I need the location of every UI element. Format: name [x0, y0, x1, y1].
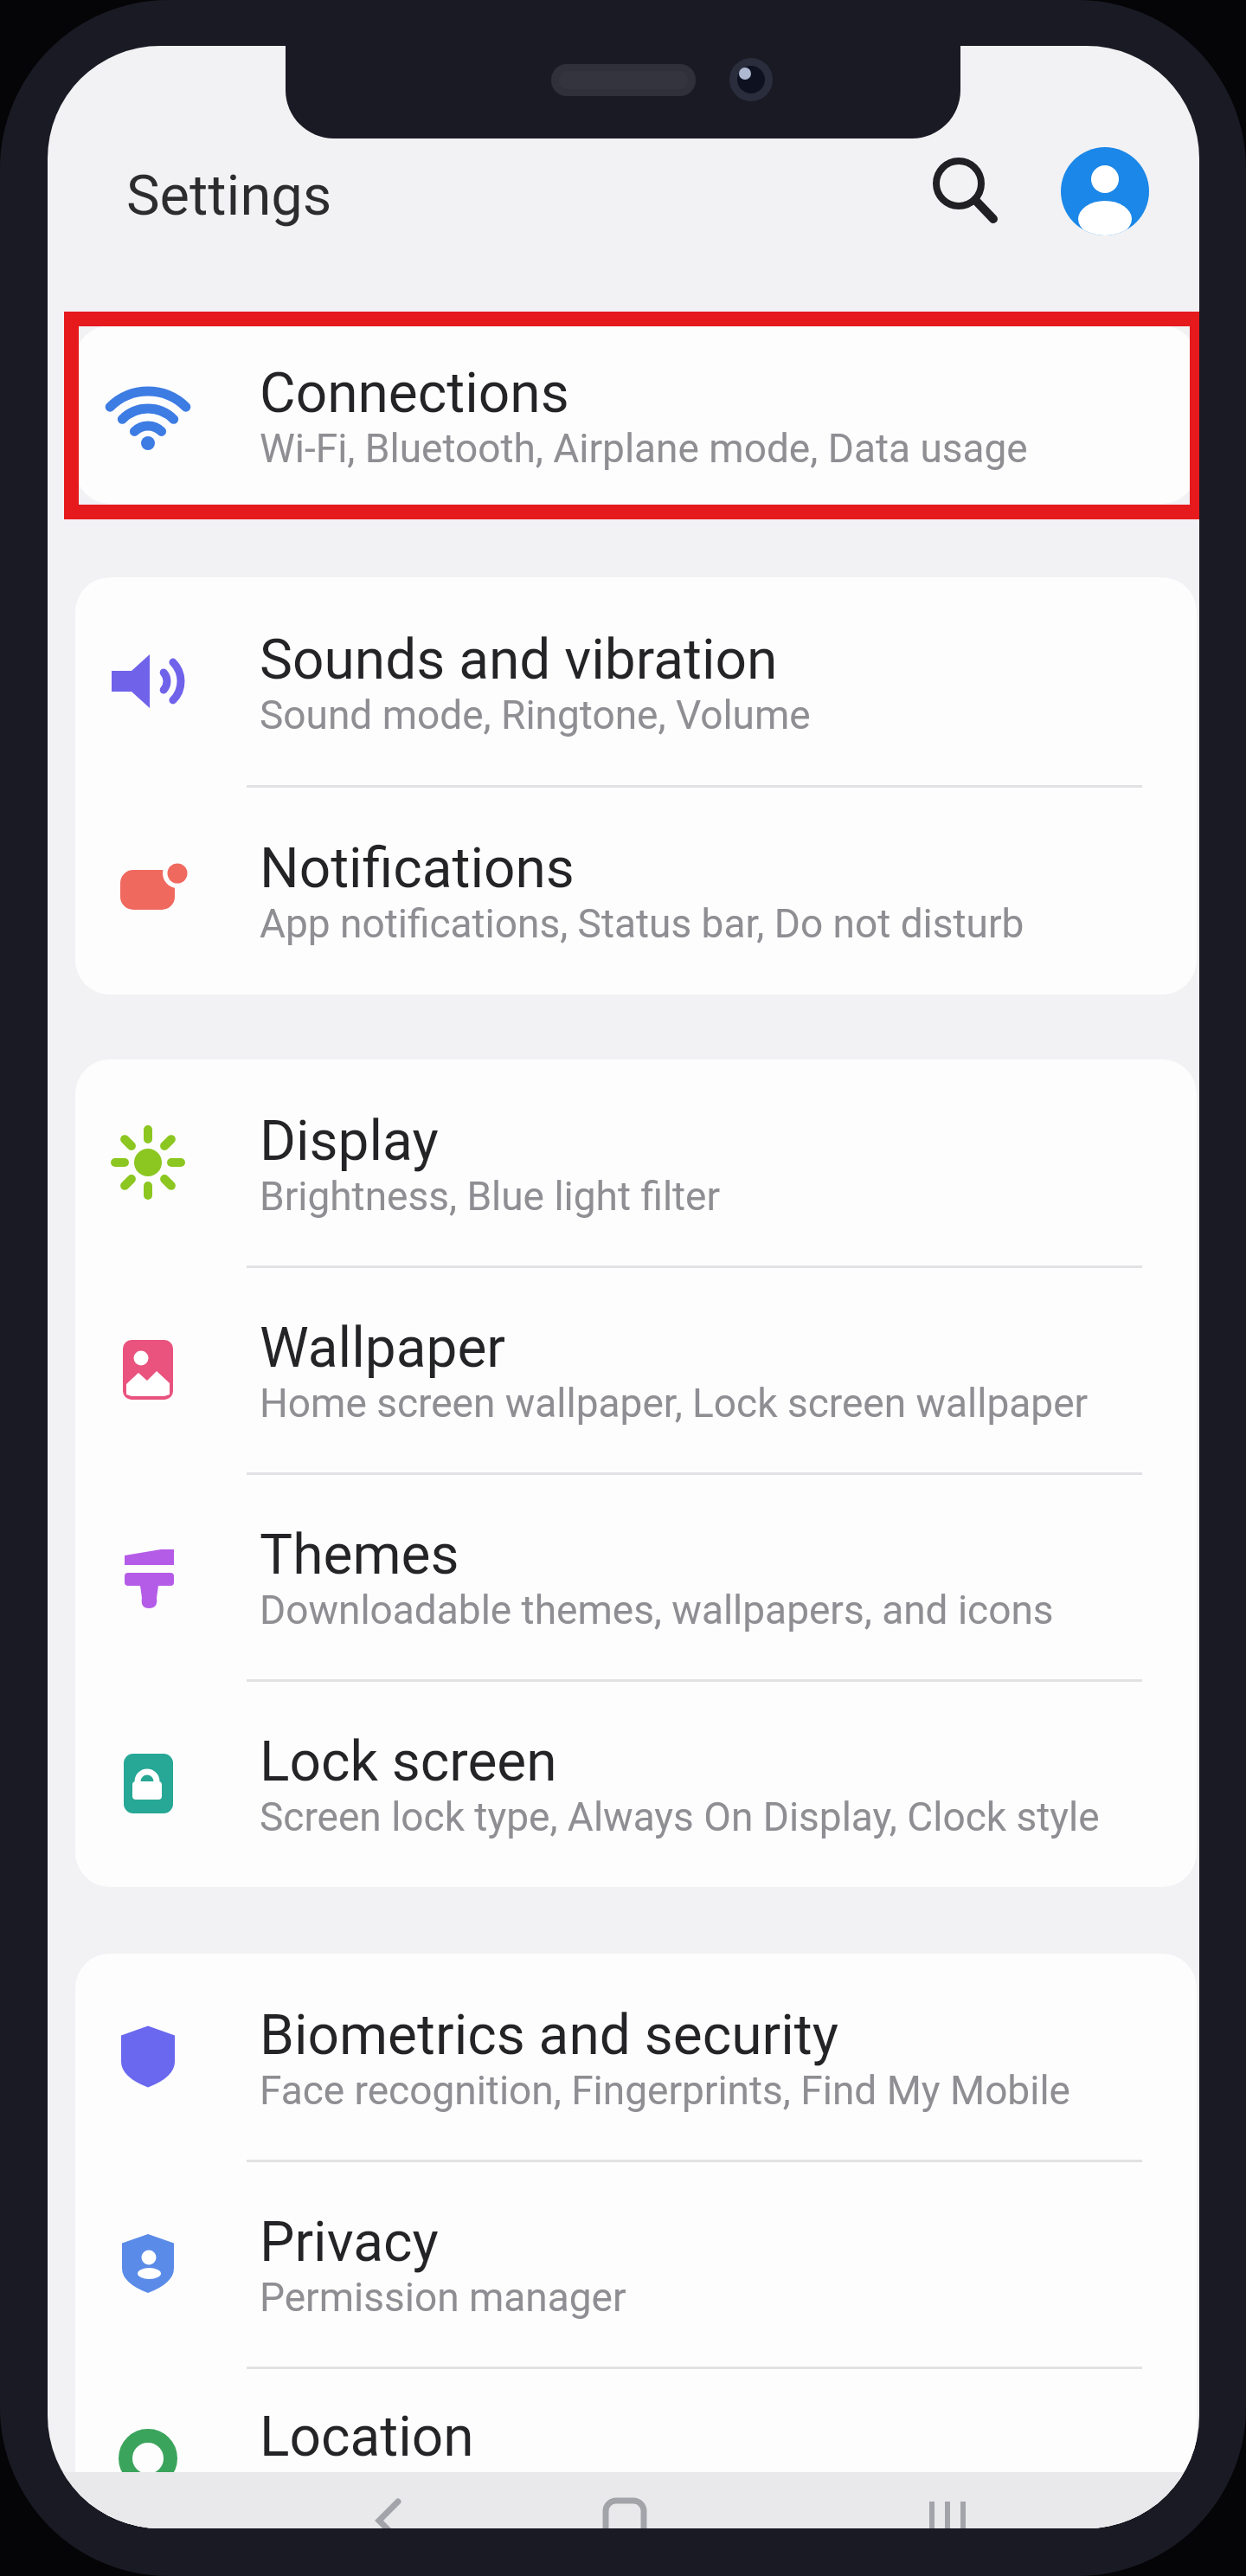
- staticText: Wi-Fi, Bluetooth, Airplane mode, Data us…: [260, 425, 1028, 472]
- button[interactable]: Location: [75, 2367, 1197, 2528]
- button[interactable]: Biometrics and security: [75, 1954, 1197, 2161]
- button[interactable]: Display: [75, 1059, 1197, 1266]
- staticText: Wallpaper: [260, 1316, 505, 1381]
- staticText: Face recognition, Fingerprints, Find My …: [260, 2067, 1070, 2114]
- staticText: Sounds and vibration: [260, 628, 778, 692]
- button[interactable]: [333, 2472, 446, 2528]
- button[interactable]: Wallpaper: [75, 1266, 1197, 1473]
- staticText: Sound mode, Ringtone, Volume: [260, 692, 811, 738]
- staticText: Notifications: [260, 836, 575, 901]
- button[interactable]: Privacy: [75, 2161, 1197, 2367]
- button[interactable]: Sounds and vibration: [75, 577, 1197, 786]
- staticText: Themes: [260, 1523, 459, 1587]
- staticText: Brightness, Blue light filter: [260, 1173, 721, 1220]
- staticText: Permission manager: [260, 2274, 626, 2321]
- button[interactable]: Lock screen: [75, 1680, 1197, 1887]
- staticText: Biometrics and security: [260, 2003, 838, 2068]
- button[interactable]: [1061, 147, 1149, 235]
- staticText: Screen lock type, Always On Display, Clo…: [260, 1794, 1100, 1840]
- button[interactable]: [924, 151, 1002, 229]
- button[interactable]: Notifications: [75, 786, 1197, 995]
- staticText: Location requests: [260, 2469, 578, 2515]
- button[interactable]: Themes: [75, 1473, 1197, 1680]
- button[interactable]: Connections: [75, 325, 1197, 504]
- staticText: Lock screen: [260, 1729, 557, 1794]
- button[interactable]: [568, 2472, 681, 2528]
- staticText: Settings: [126, 163, 332, 229]
- staticText: Display: [260, 1109, 439, 1174]
- button[interactable]: [891, 2472, 1004, 2528]
- staticText: Home screen wallpaper, Lock screen wallp…: [260, 1380, 1089, 1426]
- staticText: Downloadable themes, wallpapers, and ico…: [260, 1587, 1054, 1633]
- staticText: Privacy: [260, 2210, 439, 2275]
- staticText: App notifications, Status bar, Do not di…: [260, 900, 1024, 947]
- staticText: Connections: [260, 361, 569, 426]
- staticText: Location: [260, 2405, 474, 2470]
